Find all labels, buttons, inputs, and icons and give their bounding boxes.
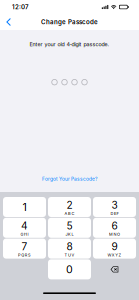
button[interactable]: Delete: [93, 259, 136, 279]
staticText: 5: [66, 220, 72, 232]
button[interactable]: 5: [48, 218, 91, 238]
button[interactable]: Forgot Your Passcode?: [39, 173, 100, 185]
staticText: 8: [66, 240, 72, 253]
button[interactable]: 8: [48, 239, 91, 259]
staticText: MNO: [109, 232, 120, 237]
staticText: 3: [111, 199, 117, 211]
staticText: 1: [22, 200, 26, 213]
button[interactable]: 6: [93, 218, 136, 238]
button[interactable]: 3: [93, 197, 136, 217]
button[interactable]: Back: [0, 14, 18, 30]
staticText: Enter your old 4-digit passcode.: [29, 41, 109, 47]
staticText: 9: [111, 240, 117, 253]
staticText: PQRS: [18, 253, 31, 257]
staticText: GHI: [21, 232, 28, 237]
staticText: 6: [111, 220, 117, 232]
button[interactable]: 0: [48, 259, 91, 279]
staticText: 12:07: [12, 3, 29, 11]
staticText: 0: [66, 263, 73, 276]
staticText: TUV: [65, 253, 74, 257]
staticText: 2: [66, 199, 72, 211]
staticText: Change Passcode: [41, 18, 98, 26]
button[interactable]: 1: [3, 197, 46, 217]
button[interactable]: 4: [3, 218, 46, 238]
staticText: ABC: [65, 211, 74, 216]
staticText: JKL: [66, 232, 73, 237]
staticText: Forgot Your Passcode?: [42, 176, 97, 182]
button[interactable]: 7: [3, 239, 46, 259]
staticText: DEF: [111, 211, 118, 216]
staticText: 7: [21, 240, 27, 253]
button[interactable]: 2: [48, 197, 91, 217]
staticText: 4: [21, 220, 28, 232]
staticText: WXYZ: [107, 253, 122, 257]
button[interactable]: 9: [93, 239, 136, 259]
